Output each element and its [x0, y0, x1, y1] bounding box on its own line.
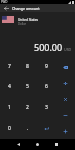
- button[interactable]: 7: [0, 56, 18, 76]
- staticText: 4: [8, 83, 11, 90]
- staticText: Change amount: [12, 6, 40, 11]
- staticText: United States: [18, 18, 39, 22]
- button[interactable]: Divide: [56, 75, 75, 91]
- staticText: 9: [45, 63, 48, 70]
- button[interactable]: .: [18, 118, 37, 139]
- button[interactable]: 6: [37, 76, 56, 97]
- button[interactable]: 9: [37, 56, 56, 76]
- button[interactable]: 4: [0, 76, 18, 97]
- button[interactable]: 0: [0, 118, 18, 139]
- staticText: 0: [8, 125, 11, 132]
- staticText: 2: [26, 104, 29, 111]
- button[interactable]: Home: [28, 139, 47, 150]
- staticText: 8: [26, 63, 29, 70]
- button[interactable]: 2: [18, 97, 37, 118]
- staticText: Dollar: [18, 22, 26, 26]
- button[interactable]: 8: [18, 56, 37, 76]
- button[interactable]: Subtract: [56, 107, 75, 123]
- button[interactable]: 3: [37, 97, 56, 118]
- staticText: 6: [45, 83, 48, 90]
- staticText: USD: [64, 47, 72, 52]
- staticText: 3: [45, 104, 48, 111]
- staticText: FWD: [1, 0, 8, 4]
- button[interactable]: Backspace: [56, 60, 75, 75]
- button[interactable]: Multiply: [56, 91, 75, 107]
- button[interactable]: 5: [18, 76, 37, 97]
- button[interactable]: Enter: [37, 118, 56, 139]
- button[interactable]: Recent apps: [47, 139, 66, 150]
- button[interactable]: Back: [9, 139, 28, 150]
- staticText: .: [27, 125, 29, 132]
- button[interactable]: United States: [0, 12, 75, 26]
- staticText: 1: [8, 104, 11, 111]
- staticText: 5: [26, 83, 29, 90]
- button[interactable]: 1: [0, 97, 18, 118]
- staticText: 7: [8, 63, 11, 70]
- button[interactable]: Add: [56, 123, 75, 139]
- staticText: 500.00: [34, 41, 63, 53]
- button[interactable]: Back: [0, 4, 12, 12]
